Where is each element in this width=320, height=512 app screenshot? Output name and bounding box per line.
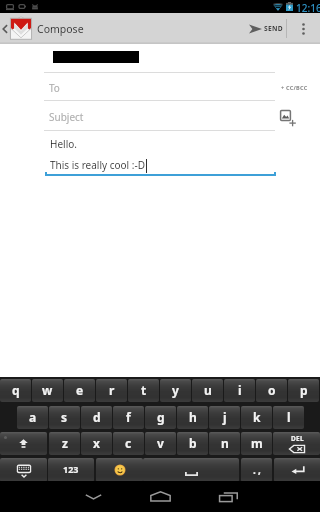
staticText: w — [42, 382, 53, 398]
button[interactable]: Period and comma — [241, 458, 272, 482]
staticText: This is really cool :-D — [50, 158, 145, 172]
button[interactable]: k — [241, 406, 272, 429]
button[interactable]: p — [288, 379, 319, 402]
staticText: m — [251, 435, 263, 451]
button[interactable]: o — [256, 379, 287, 402]
button[interactable]: j — [209, 406, 240, 429]
staticText: e — [76, 382, 84, 398]
button[interactable]: l — [273, 406, 304, 429]
button[interactable]: v — [145, 432, 176, 455]
button[interactable]: r — [96, 379, 127, 402]
button[interactable]: q — [0, 379, 31, 402]
button[interactable]: i — [224, 379, 255, 402]
button[interactable]: h — [177, 406, 208, 429]
staticText: y — [172, 382, 179, 398]
other: Navigate up — [2, 23, 8, 35]
staticText: o — [268, 382, 276, 398]
staticText: x — [93, 435, 100, 451]
staticText: Compose — [37, 22, 84, 36]
button[interactable]: Delete — [273, 432, 320, 455]
button[interactable]: t — [128, 379, 159, 402]
staticText: 12:16 — [296, 1, 320, 14]
button[interactable]: Navigate up — [0, 13, 84, 44]
button[interactable]: u — [192, 379, 223, 402]
staticText: n — [221, 435, 229, 451]
staticText: z — [62, 435, 68, 451]
button[interactable]: x — [81, 432, 112, 455]
button[interactable]: + CC/BCC — [279, 82, 310, 93]
button[interactable]: a — [17, 406, 48, 429]
button[interactable]: Home — [129, 481, 191, 512]
staticText: + CC/BCC — [281, 84, 308, 91]
staticText: b — [189, 435, 197, 451]
button[interactable]: More options — [287, 13, 320, 44]
button[interactable]: d — [81, 406, 112, 429]
staticText: s — [61, 409, 68, 425]
button[interactable]: Back — [62, 481, 124, 512]
button[interactable]: 123 — [48, 458, 94, 482]
staticText: t — [141, 382, 147, 398]
button[interactable]: m — [241, 432, 272, 455]
staticText: l — [287, 409, 291, 425]
button[interactable]: Emoji — [96, 458, 143, 482]
button[interactable]: b — [177, 432, 208, 455]
button[interactable]: Shift — [0, 432, 47, 455]
button[interactable]: Recent apps — [197, 481, 259, 512]
staticText: f — [126, 409, 131, 425]
button[interactable]: w — [32, 379, 63, 402]
button[interactable]: s — [49, 406, 80, 429]
staticText: a — [29, 409, 37, 425]
button[interactable]: e — [64, 379, 95, 402]
staticText: , — [258, 463, 261, 477]
button[interactable]: y — [160, 379, 191, 402]
button[interactable]: f — [113, 406, 144, 429]
staticText: u — [204, 382, 212, 398]
button[interactable]: g — [145, 406, 176, 429]
staticText: k — [253, 409, 261, 425]
staticText: d — [93, 409, 101, 425]
staticText: q — [12, 382, 20, 398]
button[interactable]: Switch keyboard — [0, 458, 47, 482]
other: Attach picture — [280, 110, 298, 128]
staticText: Hello. — [50, 137, 77, 151]
staticText: c — [125, 435, 132, 451]
staticText: To — [49, 81, 60, 95]
button[interactable]: SEND — [239, 13, 286, 44]
staticText: p — [300, 382, 308, 398]
staticText: i — [238, 382, 242, 398]
staticText: g — [157, 409, 165, 425]
staticText: 123 — [63, 463, 79, 475]
button[interactable]: c — [113, 432, 144, 455]
staticText: Subject — [49, 110, 84, 124]
button[interactable]: Attach picture — [280, 110, 298, 128]
staticText: v — [157, 435, 164, 451]
staticText: SEND — [264, 24, 283, 33]
staticText: r — [109, 382, 115, 398]
button[interactable]: Space — [143, 458, 239, 482]
staticText: j — [223, 409, 227, 425]
button[interactable]: n — [209, 432, 240, 455]
button[interactable]: Enter — [274, 458, 320, 482]
staticText: h — [189, 409, 197, 425]
staticText: . — [253, 463, 256, 477]
staticText: DEL — [291, 434, 304, 443]
button[interactable]: z — [49, 432, 80, 455]
